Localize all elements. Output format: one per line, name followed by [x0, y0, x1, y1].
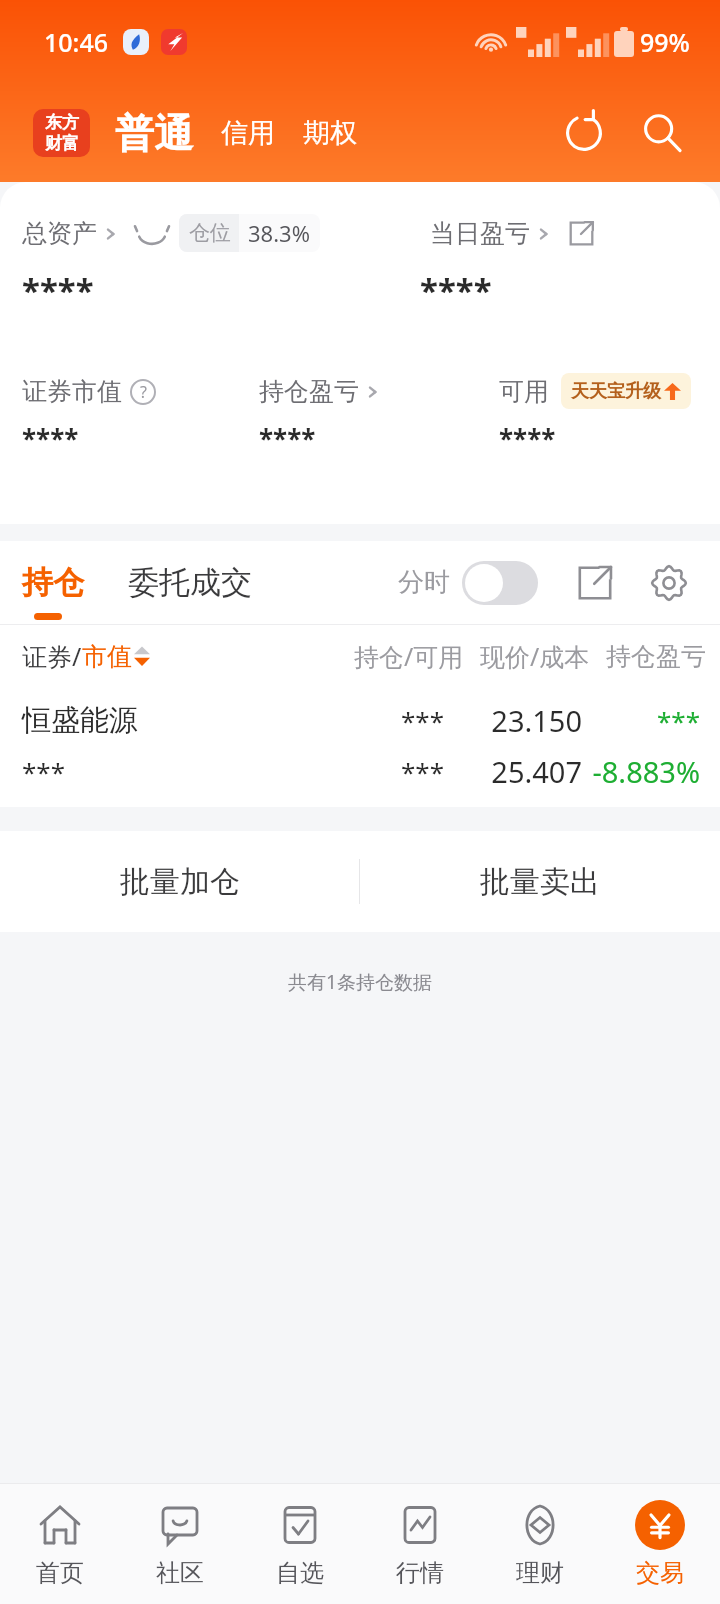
button[interactable]: 持仓盈亏: [606, 641, 714, 672]
staticText: 恒盛能源: [22, 702, 358, 739]
button[interactable]: 社区: [120, 1484, 240, 1604]
staticText: 批量加仓: [120, 863, 240, 901]
staticText: 当日盈亏: [430, 218, 530, 249]
staticText: 仓位: [189, 220, 231, 246]
staticText: 委托成交: [128, 563, 252, 602]
button[interactable]: 理财: [480, 1484, 600, 1604]
staticText: ****: [499, 421, 556, 456]
button[interactable]: 天天宝升级: [571, 373, 681, 409]
staticText: 证券市值: [22, 376, 122, 407]
staticText: ?: [140, 381, 147, 403]
staticText: 持仓盈亏: [259, 376, 359, 407]
staticText: 交易: [636, 1558, 684, 1588]
button[interactable]: 行情: [360, 1484, 480, 1604]
button[interactable]: Hide amount: [135, 221, 169, 245]
staticText: -8.883%: [582, 752, 700, 791]
button[interactable]: 批量加仓: [0, 831, 359, 932]
button[interactable]: 交易: [600, 1484, 720, 1604]
staticText: 分时: [398, 566, 450, 599]
staticText: ****: [22, 421, 259, 456]
button[interactable]: 批量卖出: [360, 831, 720, 932]
staticText: 持仓: [22, 563, 84, 602]
staticText: ***: [22, 754, 358, 789]
staticText: 99%: [640, 25, 690, 59]
button[interactable]: 首页: [0, 1484, 120, 1604]
button[interactable]: 期权: [303, 116, 357, 150]
button[interactable]: 恒盛能源: [0, 687, 720, 807]
staticText: 可用: [499, 376, 549, 407]
button[interactable]: 东方: [33, 109, 90, 157]
staticText: ***: [582, 703, 700, 738]
button[interactable]: 信用: [221, 116, 275, 150]
staticText: 总资产: [22, 218, 97, 249]
staticText: ****: [259, 421, 499, 456]
button[interactable]: 证券/: [22, 639, 150, 673]
staticText: 行情: [396, 1558, 444, 1588]
staticText: 天天宝升级: [571, 380, 661, 403]
staticText: ***: [358, 754, 444, 789]
button[interactable]: 普通: [115, 109, 193, 158]
button[interactable]: Refresh: [554, 103, 614, 163]
button[interactable]: Settings: [642, 556, 696, 610]
staticText: 财富: [45, 133, 79, 154]
button[interactable]: 仓位: [179, 214, 320, 252]
staticText: 首页: [36, 1558, 84, 1588]
button[interactable]: Search: [632, 103, 692, 163]
staticText: 证券/: [22, 639, 82, 673]
button[interactable]: Help: [130, 379, 156, 405]
staticText: 批量卖出: [480, 863, 600, 901]
button[interactable]: 总资产: [22, 218, 121, 249]
staticText: 38.3%: [248, 218, 310, 248]
button[interactable]: Toggle time chart: [462, 561, 538, 605]
staticText: ***: [358, 703, 444, 738]
staticText: 持仓盈亏: [606, 641, 706, 672]
staticText: 自选: [276, 1558, 324, 1588]
staticText: ****: [420, 268, 492, 313]
staticText: 东方: [45, 112, 79, 133]
staticText: ****: [22, 268, 420, 313]
button[interactable]: Expand: [568, 556, 622, 610]
staticText: 共有1条持仓数据: [0, 969, 720, 995]
button[interactable]: 持仓: [22, 563, 84, 602]
staticText: 理财: [516, 1558, 564, 1588]
staticText: 10:46: [44, 25, 109, 59]
staticText: 市值: [82, 641, 132, 672]
button[interactable]: 现价/成本: [480, 639, 590, 673]
button[interactable]: 当日盈亏: [430, 218, 720, 249]
staticText: 23.150: [444, 701, 582, 740]
button[interactable]: 自选: [240, 1484, 360, 1604]
button[interactable]: 持仓盈亏: [259, 376, 499, 407]
staticText: 社区: [156, 1558, 204, 1588]
button[interactable]: 委托成交: [128, 563, 252, 602]
button[interactable]: 持仓/可用: [354, 639, 464, 673]
staticText: 25.407: [444, 752, 582, 791]
